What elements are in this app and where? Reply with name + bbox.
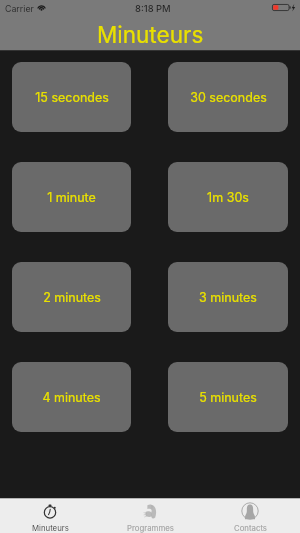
staticText: 4 minutes [42, 390, 101, 405]
button[interactable]: Programmes [100, 499, 200, 533]
button[interactable]: 30 secondes [168, 62, 288, 132]
staticText: 5 minutes [199, 390, 257, 405]
button[interactable]: 2 minutes [12, 262, 131, 332]
staticText: Programmes [127, 523, 174, 532]
button[interactable]: 1m 30s [168, 162, 288, 232]
staticText: 3 minutes [199, 290, 257, 305]
button[interactable]: Contacts [200, 499, 300, 533]
staticText: Carrier [5, 3, 34, 14]
staticText: 8:18 PM [135, 3, 171, 14]
button[interactable]: 5 minutes [168, 362, 288, 432]
other: Programmes [144, 504, 157, 519]
staticText: Contacts [234, 523, 267, 532]
button[interactable]: 3 minutes [168, 262, 288, 332]
button[interactable]: 1 minute [12, 162, 131, 232]
staticText: 1m 30s [207, 190, 249, 205]
other: Contacts [241, 502, 259, 520]
button[interactable]: Minuteurs [0, 499, 100, 533]
staticText: 15 secondes [35, 90, 109, 105]
staticText: Minuteurs [32, 523, 69, 532]
staticText: 30 secondes [190, 90, 267, 105]
staticText: Minuteurs [97, 21, 204, 48]
button[interactable]: 15 secondes [12, 62, 131, 132]
button[interactable]: 4 minutes [12, 362, 131, 432]
staticText: 2 minutes [43, 290, 101, 305]
staticText: 1 minute [47, 190, 96, 205]
other: Minuteurs [43, 504, 57, 518]
